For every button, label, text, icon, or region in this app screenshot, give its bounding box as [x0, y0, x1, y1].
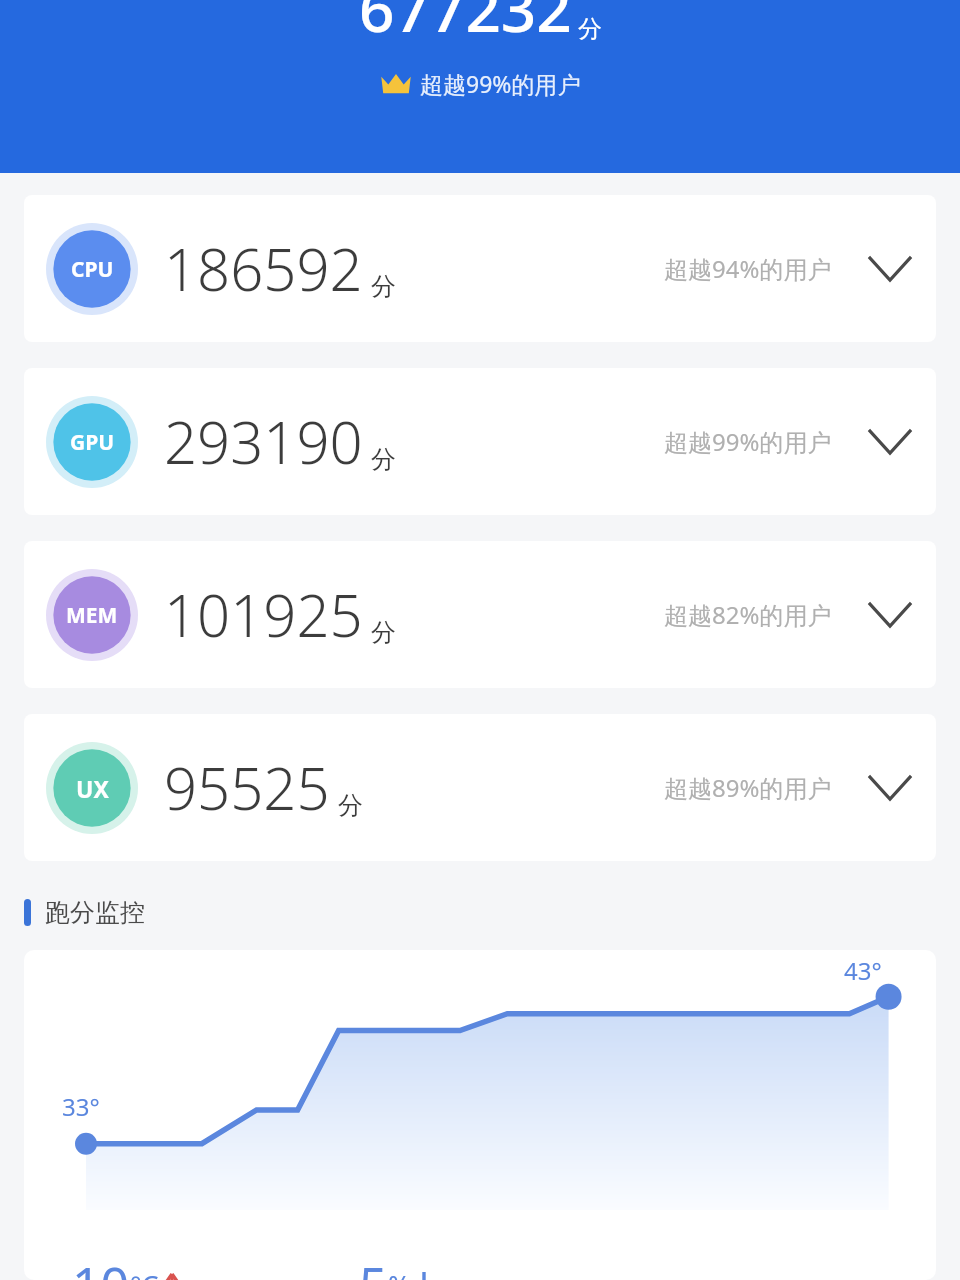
staticText: 超越94%的用户: [664, 252, 832, 285]
staticText: 分: [338, 790, 363, 821]
button[interactable]: 展开 MEM: [862, 587, 918, 643]
staticText: GPU: [70, 428, 115, 457]
staticText: CPU: [71, 255, 114, 284]
staticText: 分: [371, 617, 396, 648]
staticText: 43°: [844, 954, 882, 987]
staticText: 293190: [164, 402, 363, 481]
button[interactable]: GPU: [24, 368, 936, 515]
staticText: 分: [578, 14, 602, 44]
button[interactable]: 展开 CPU: [862, 241, 918, 297]
staticText: 5: [359, 1250, 388, 1280]
button[interactable]: MEM: [24, 541, 936, 688]
staticText: 跑分监控: [45, 897, 145, 928]
staticText: 超越89%的用户: [664, 771, 832, 804]
staticText: 95525: [164, 748, 330, 827]
staticText: 186592: [164, 229, 363, 308]
staticText: %: [388, 1267, 411, 1280]
staticText: 101925: [164, 575, 363, 654]
button[interactable]: CPU: [24, 195, 936, 342]
staticText: 超越99%的用户: [664, 425, 832, 458]
staticText: 33°: [62, 1090, 100, 1123]
button[interactable]: 展开 GPU: [862, 414, 918, 470]
staticText: UX: [76, 773, 109, 804]
staticText: 10: [72, 1250, 130, 1280]
button[interactable]: 33°: [24, 950, 936, 1280]
staticText: 分: [371, 271, 396, 302]
button[interactable]: 展开 UX: [862, 760, 918, 816]
staticText: 超越99%的用户: [420, 68, 581, 99]
staticText: MEM: [66, 601, 118, 630]
staticText: °C: [130, 1267, 159, 1280]
staticText: 超越82%的用户: [664, 598, 832, 631]
staticText: 分: [371, 444, 396, 475]
staticText: 677232: [359, 0, 572, 50]
button[interactable]: UX: [24, 714, 936, 861]
